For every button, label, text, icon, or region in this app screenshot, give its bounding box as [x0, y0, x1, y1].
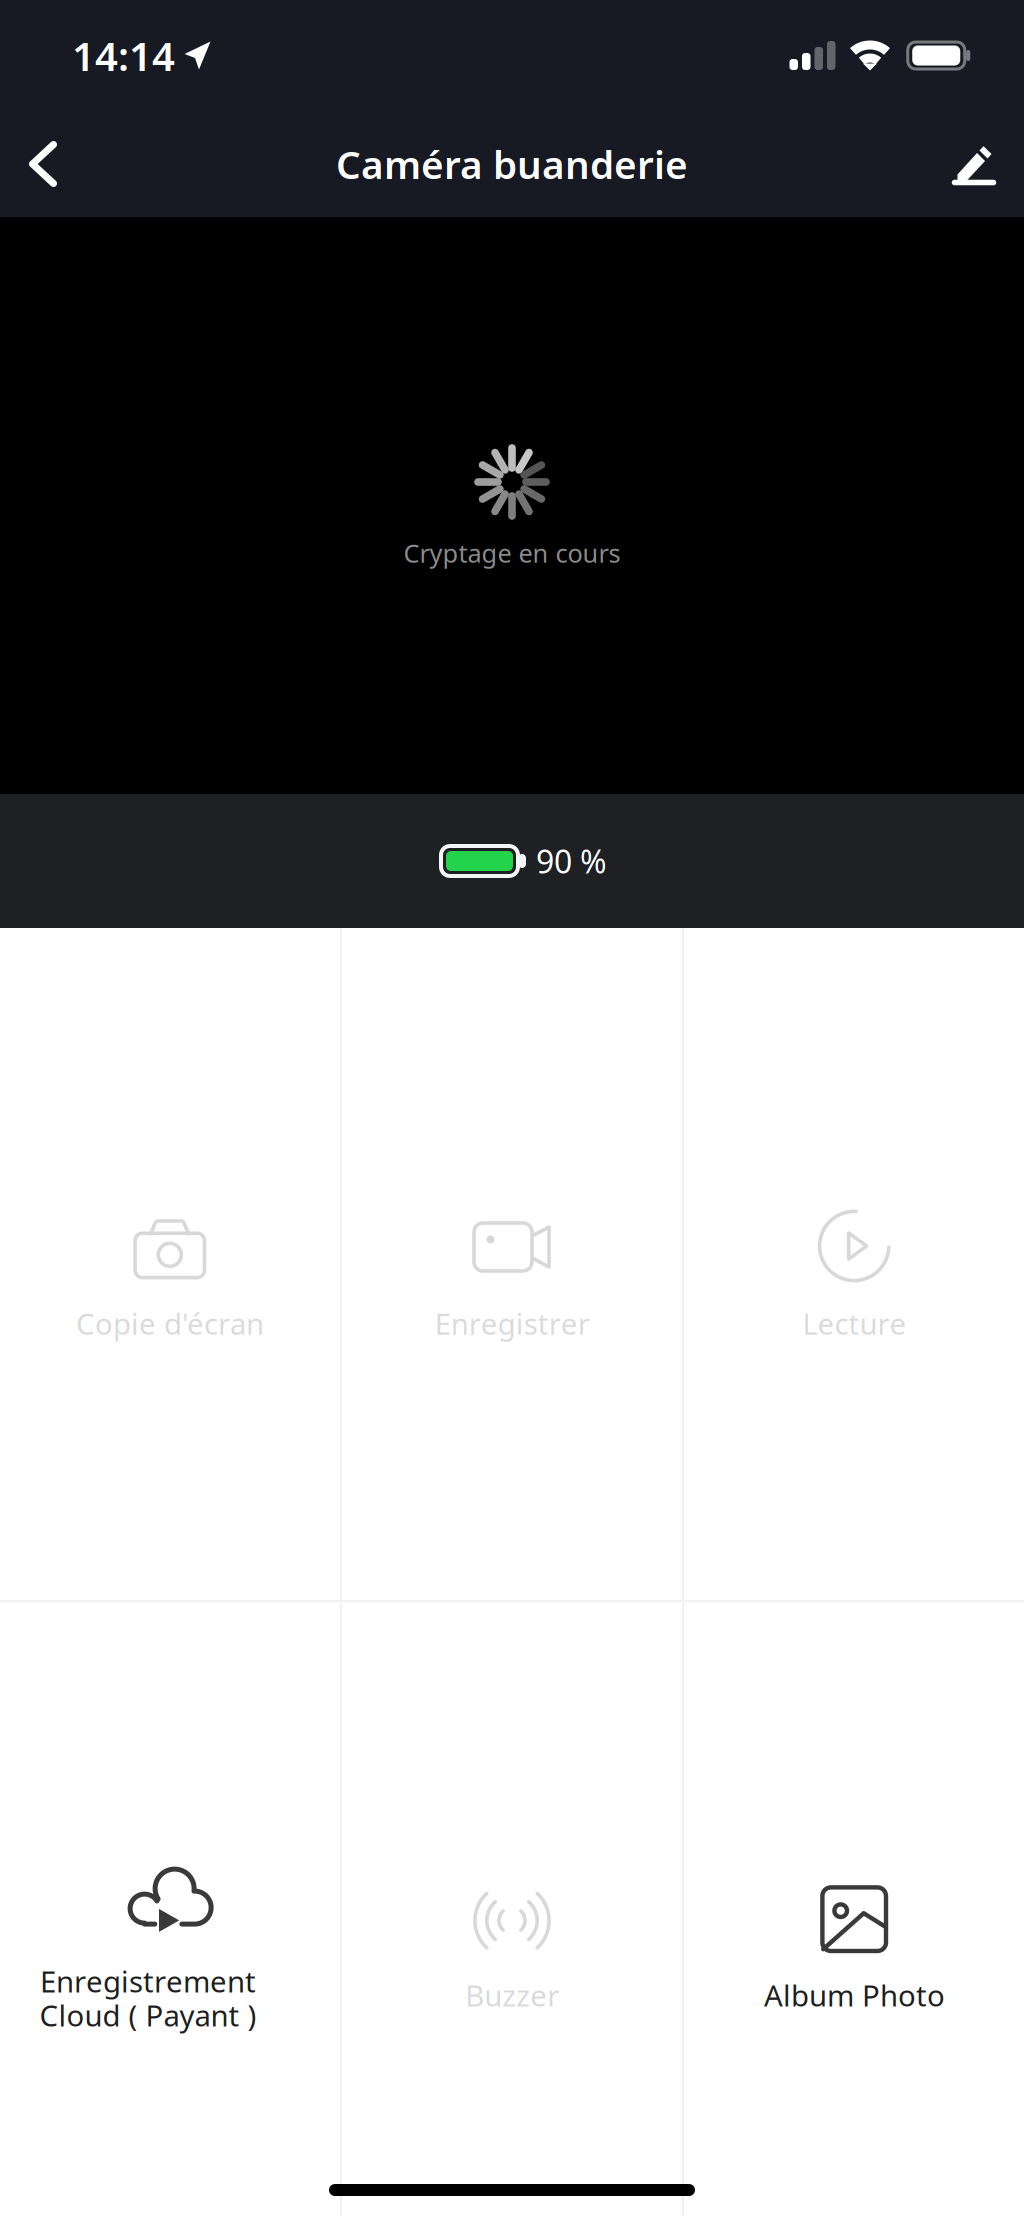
staticText: Copie d'écran [76, 1304, 264, 1343]
button[interactable]: Enregistrement Cloud ( Payant ) [0, 1603, 340, 2216]
button[interactable]: Edit [914, 111, 1024, 217]
staticText: Enregistrement Cloud ( Payant ) [39, 1962, 256, 2034]
button[interactable]: Back [0, 111, 93, 217]
staticText: Album Photo [764, 1976, 945, 2015]
button[interactable]: Copie d'écran [0, 928, 340, 1600]
staticText: Buzzer [465, 1976, 559, 2015]
staticText: 14:14 [72, 29, 175, 82]
button[interactable]: Album Photo [684, 1603, 1024, 2216]
staticText: Caméra buanderie [336, 138, 688, 190]
staticText: 90 % [536, 840, 607, 882]
button[interactable]: Buzzer [342, 1603, 682, 2216]
staticText: Lecture [802, 1304, 906, 1343]
button[interactable]: Enregistrer [342, 928, 682, 1600]
staticText: Enregistrer [434, 1304, 589, 1343]
staticText: Cryptage en cours [403, 536, 620, 570]
